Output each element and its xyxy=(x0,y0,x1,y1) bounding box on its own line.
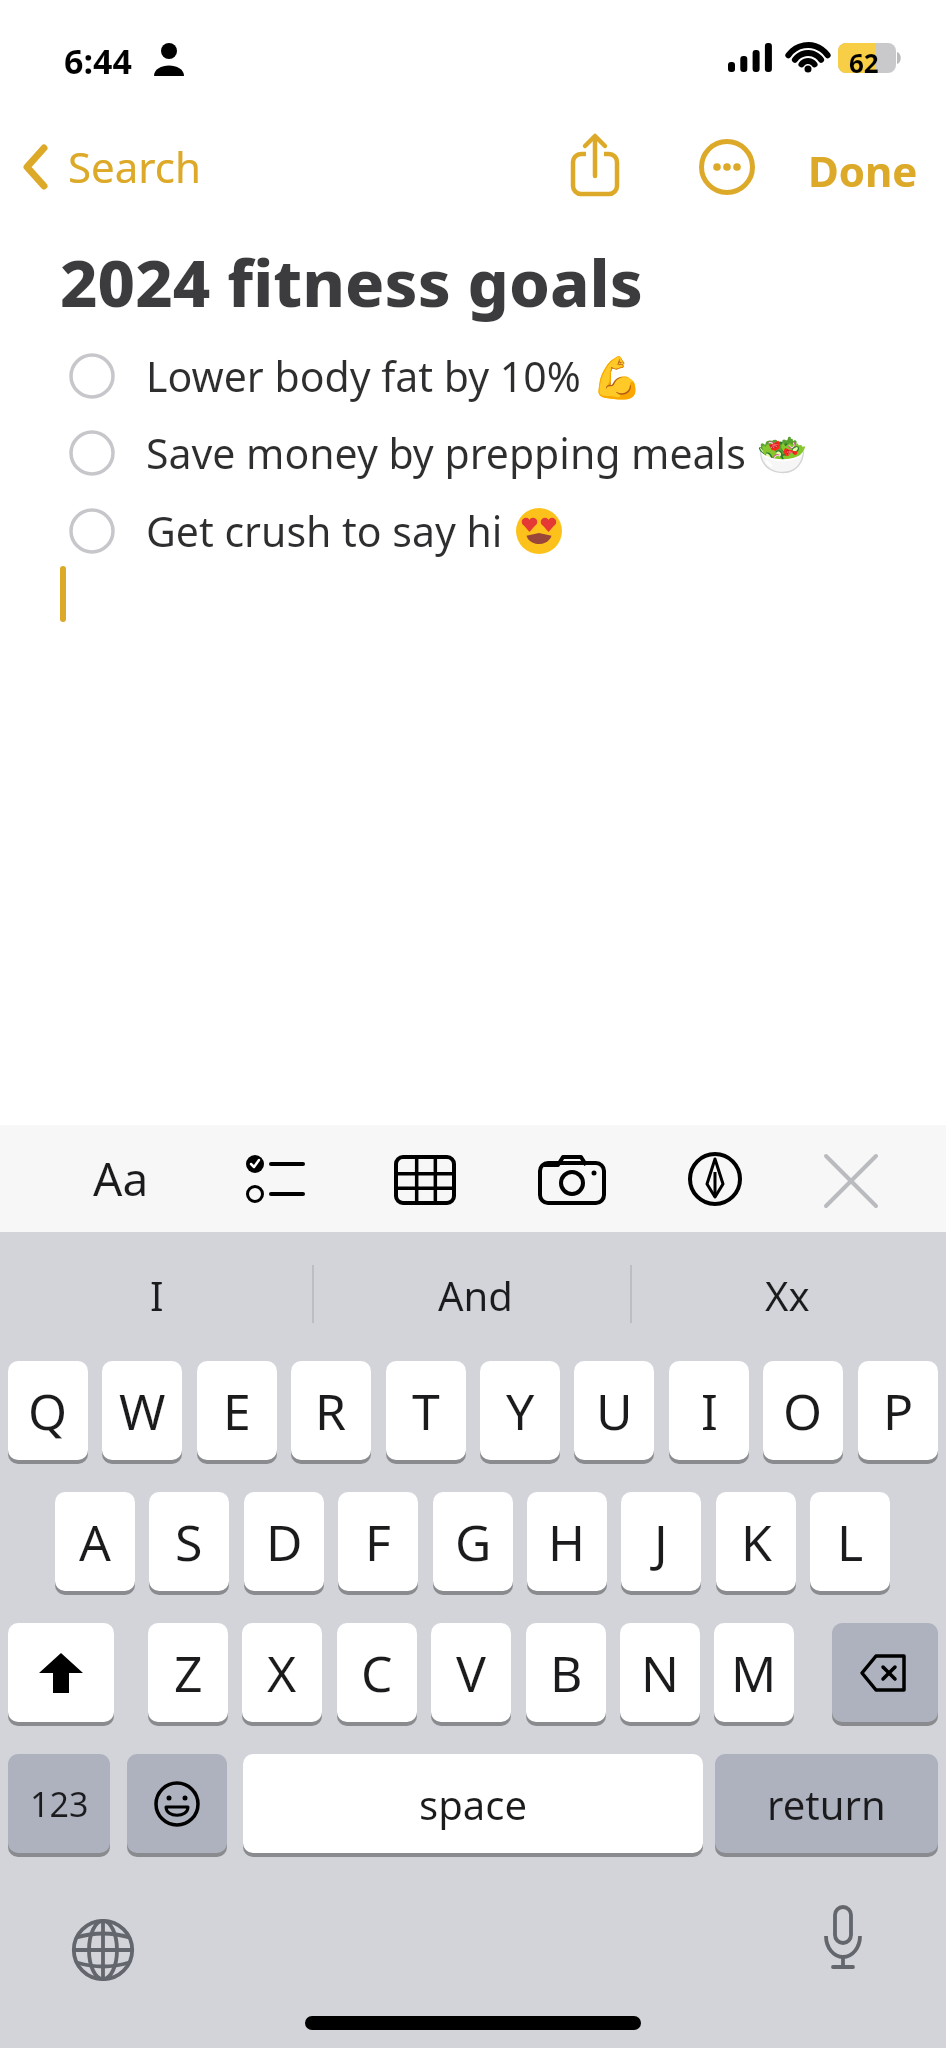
staticText: R xyxy=(315,1377,347,1445)
button[interactable]: O xyxy=(763,1361,843,1460)
staticText: V xyxy=(456,1639,486,1707)
staticText: Y xyxy=(506,1377,535,1445)
staticText: A xyxy=(79,1508,111,1576)
button[interactable] xyxy=(394,1155,456,1205)
button[interactable]: S xyxy=(149,1492,229,1591)
staticText: 2024 fitness goals xyxy=(60,238,643,327)
staticText: C xyxy=(361,1639,393,1707)
button[interactable]: K xyxy=(716,1492,796,1591)
button[interactable] xyxy=(815,1905,871,1989)
staticText: B xyxy=(550,1639,583,1707)
button[interactable]: J xyxy=(621,1492,701,1591)
staticText: W xyxy=(119,1377,166,1445)
button[interactable]: space xyxy=(243,1754,703,1853)
button[interactable]: G xyxy=(433,1492,513,1591)
button[interactable] xyxy=(538,1153,606,1205)
button[interactable]: W xyxy=(102,1361,182,1460)
button[interactable]: L xyxy=(810,1492,890,1591)
button[interactable] xyxy=(8,1623,114,1722)
button[interactable]: B xyxy=(526,1623,606,1722)
button[interactable]: T xyxy=(386,1361,466,1460)
button[interactable] xyxy=(127,1754,227,1853)
staticText: 123 xyxy=(30,1781,89,1827)
button[interactable]: Xx xyxy=(765,1268,810,1322)
button[interactable] xyxy=(699,139,755,195)
button[interactable] xyxy=(688,1152,742,1206)
button[interactable]: And xyxy=(438,1268,513,1322)
staticText: L xyxy=(837,1508,864,1576)
button[interactable]: Lower body fat by 10% 💪 xyxy=(69,348,643,404)
staticText: Q xyxy=(28,1377,68,1445)
staticText: I xyxy=(701,1377,718,1445)
staticText: F xyxy=(365,1508,391,1576)
staticText: M xyxy=(731,1639,777,1707)
staticText: return xyxy=(767,1777,886,1831)
button[interactable] xyxy=(245,1155,305,1203)
button[interactable]: D xyxy=(244,1492,324,1591)
staticText: D xyxy=(266,1508,303,1576)
button[interactable]: E xyxy=(197,1361,277,1460)
button[interactable]: return xyxy=(715,1754,938,1853)
staticText: E xyxy=(223,1377,251,1445)
staticText: O xyxy=(783,1377,823,1445)
staticText: G xyxy=(455,1508,492,1576)
button[interactable]: Aa xyxy=(93,1147,149,1210)
button[interactable]: I xyxy=(669,1361,749,1460)
button[interactable]: 123 xyxy=(8,1754,110,1853)
staticText: space xyxy=(419,1777,527,1831)
button[interactable]: N xyxy=(620,1623,700,1722)
button[interactable]: Q xyxy=(8,1361,88,1460)
button[interactable]: Get crush to say hi xyxy=(69,503,564,559)
button[interactable]: P xyxy=(858,1361,938,1460)
staticText: Save money by prepping meals 🥗 xyxy=(146,425,808,481)
button[interactable]: M xyxy=(714,1623,794,1722)
button[interactable]: Done xyxy=(808,142,918,199)
button[interactable]: Z xyxy=(148,1623,228,1722)
staticText: H xyxy=(548,1508,586,1576)
staticText: 62 xyxy=(849,45,879,80)
button[interactable]: Search xyxy=(20,138,201,195)
button[interactable] xyxy=(571,134,619,196)
button[interactable]: C xyxy=(337,1623,417,1722)
staticText: T xyxy=(412,1377,440,1445)
button[interactable]: Save money by prepping meals 🥗 xyxy=(69,425,808,481)
staticText: Z xyxy=(174,1639,203,1707)
button[interactable]: I xyxy=(150,1268,164,1322)
staticText: N xyxy=(641,1639,679,1707)
button[interactable]: U xyxy=(574,1361,654,1460)
button[interactable]: X xyxy=(242,1623,322,1722)
staticText: Lower body fat by 10% 💪 xyxy=(146,348,643,404)
button[interactable]: V xyxy=(431,1623,511,1722)
button[interactable] xyxy=(822,1152,880,1210)
staticText: Get crush to say hi xyxy=(146,503,514,559)
staticText: K xyxy=(741,1508,772,1576)
staticText: X xyxy=(267,1639,297,1707)
button[interactable]: F xyxy=(338,1492,418,1591)
button[interactable] xyxy=(70,1917,136,1983)
button[interactable] xyxy=(832,1623,938,1722)
button[interactable]: R xyxy=(291,1361,371,1460)
staticText: 6:44 xyxy=(64,38,132,84)
button[interactable]: H xyxy=(527,1492,607,1591)
staticText: P xyxy=(883,1377,914,1445)
staticText: S xyxy=(175,1508,203,1576)
button[interactable]: A xyxy=(55,1492,135,1591)
staticText: Search xyxy=(68,138,201,195)
staticText: J xyxy=(654,1508,668,1576)
button[interactable]: Y xyxy=(480,1361,560,1460)
staticText: U xyxy=(596,1377,633,1445)
